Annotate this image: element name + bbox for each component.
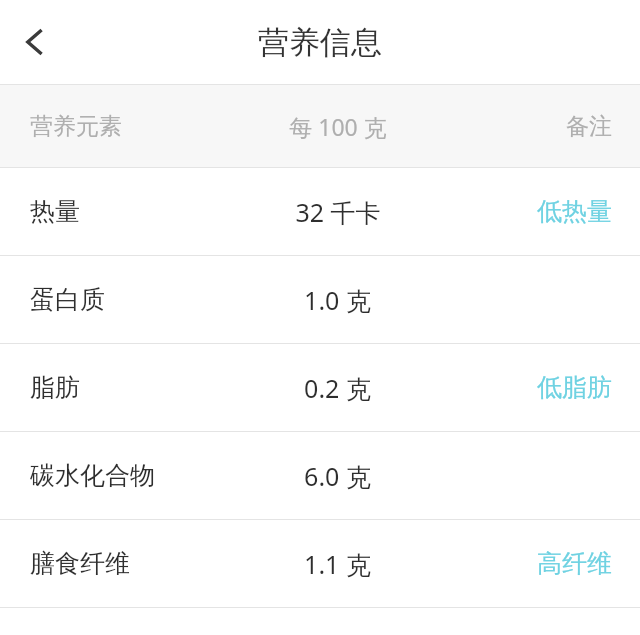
staticText: 每 100 克 [289, 111, 387, 142]
staticText: 6.0 克 [304, 459, 371, 493]
staticText: 脂肪 [30, 372, 80, 403]
button[interactable]: 热量 [0, 168, 640, 255]
staticText: 营养信息 [258, 23, 382, 62]
staticText: 备注 [566, 112, 612, 141]
staticText: 高纤维 [537, 548, 612, 579]
button[interactable]: 脂肪 [0, 344, 640, 431]
staticText: 碳水化合物 [30, 460, 155, 491]
staticText: 1.0 克 [304, 283, 371, 317]
button[interactable]: Back [4, 11, 66, 73]
staticText: 蛋白质 [30, 284, 105, 315]
staticText: 低脂肪 [537, 372, 612, 403]
button[interactable]: 蛋白质 [0, 256, 640, 343]
staticText: 营养元素 [30, 112, 122, 141]
button[interactable]: 碳水化合物 [0, 432, 640, 519]
staticText: 膳食纤维 [30, 548, 130, 579]
staticText: 32 千卡 [295, 195, 381, 229]
button[interactable]: 膳食纤维 [0, 520, 640, 607]
staticText: 0.2 克 [304, 371, 371, 405]
staticText: 低热量 [537, 196, 612, 227]
staticText: 1.1 克 [304, 547, 371, 581]
staticText: 热量 [30, 196, 80, 227]
